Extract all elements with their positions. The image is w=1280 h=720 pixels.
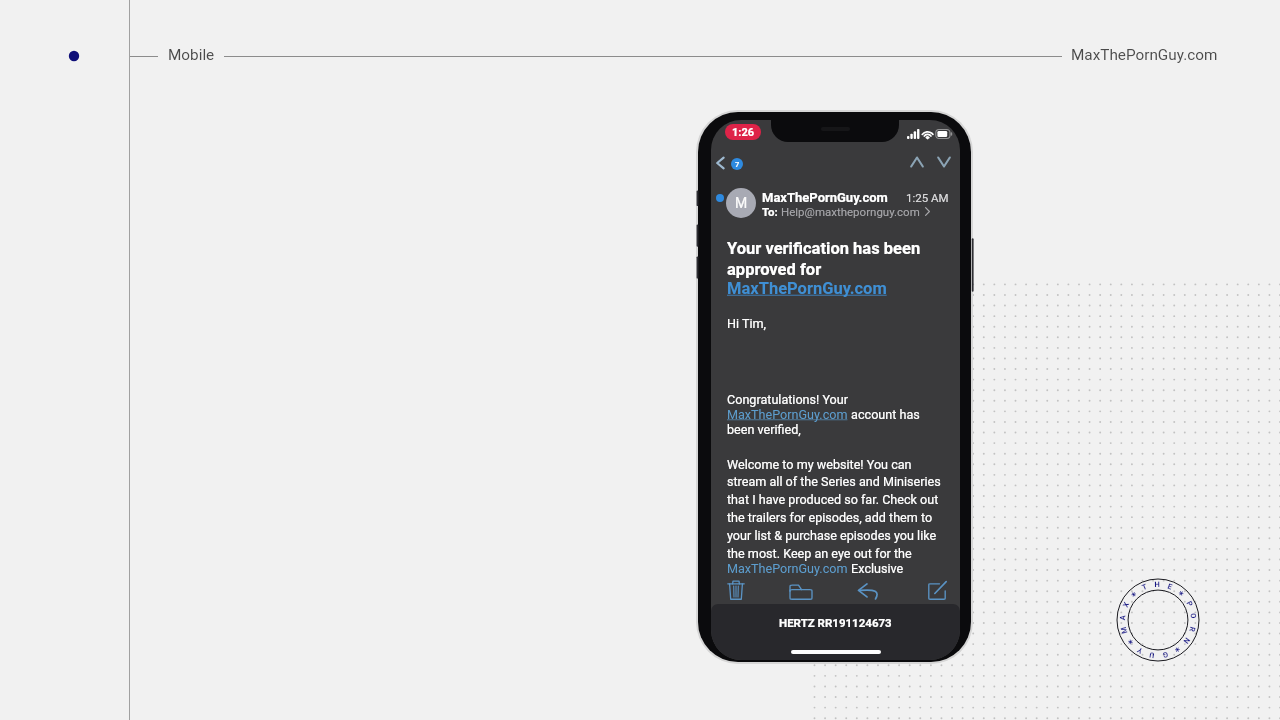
- button[interactable]: Previous message: [910, 156, 924, 168]
- staticText: been verified,: [727, 422, 801, 437]
- button[interactable]: Compose: [925, 579, 949, 601]
- button[interactable]: Move to folder: [789, 579, 813, 601]
- staticText: Mobile: [168, 46, 215, 64]
- staticText: 1:25 AM: [906, 191, 949, 204]
- button[interactable]: 7: [731, 158, 743, 170]
- staticText: To:: [762, 205, 781, 218]
- staticText: Your verification has been approved for: [727, 239, 921, 279]
- button[interactable]: MaxThePornGuy.com: [727, 279, 887, 298]
- staticText: account has: [848, 407, 920, 422]
- button[interactable]: Back: [713, 154, 727, 172]
- staticText: 1:26: [732, 126, 755, 139]
- staticText: Welcome to my website! You can stream al…: [727, 457, 941, 561]
- button[interactable]: Message header from MaxThePornGuy.com: [711, 182, 960, 226]
- staticText: MaxThePornGuy.com: [1071, 46, 1218, 64]
- button[interactable]: Next message: [937, 156, 951, 168]
- staticText: M: [735, 195, 748, 211]
- staticText: Exclusive: [848, 561, 904, 576]
- staticText: HERTZ RR191124673: [779, 616, 892, 629]
- button[interactable]: MaxThePornGuy.com: [727, 561, 848, 576]
- staticText: 7: [735, 160, 740, 169]
- staticText: Hi Tim,: [727, 316, 767, 331]
- button[interactable]: To:: [762, 205, 930, 218]
- button[interactable]: Delete: [724, 579, 748, 601]
- staticText: Congratulations! Your: [727, 392, 848, 407]
- button[interactable]: MaxThePornGuy.com: [727, 407, 848, 422]
- button[interactable]: Reply: [857, 579, 881, 601]
- staticText: MaxThePornGuy.com: [762, 190, 888, 205]
- staticText: Help@maxthepornguy.com: [781, 205, 920, 218]
